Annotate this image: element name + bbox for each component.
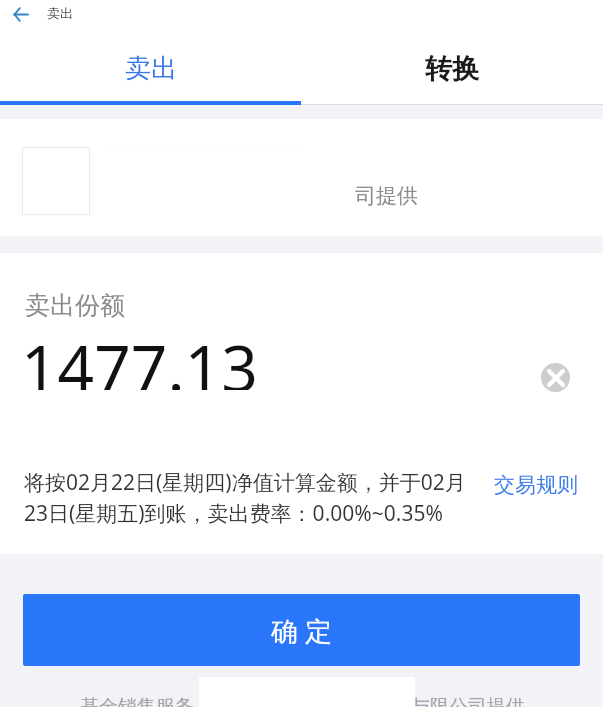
button[interactable]: Clear bbox=[541, 363, 570, 392]
button[interactable]: 卖出 bbox=[0, 34, 301, 101]
staticText: 将按02月22日(星期四)净值计算金额，并于02月23日(星期五)到账，卖出费率… bbox=[24, 468, 479, 527]
staticText: 司提供 bbox=[355, 183, 418, 209]
button[interactable]: 转换 bbox=[301, 34, 603, 101]
staticText: 与限公司提供 bbox=[411, 695, 525, 707]
staticText: 基金销售服务 bbox=[80, 695, 194, 707]
staticText: 确 定 bbox=[271, 612, 333, 649]
staticText: 卖出 bbox=[125, 52, 177, 85]
button[interactable]: Back bbox=[6, 0, 34, 28]
staticText: 卖出份额 bbox=[25, 290, 125, 321]
button[interactable]: 确 定 bbox=[23, 594, 580, 666]
staticText: 卖出 bbox=[47, 5, 73, 21]
button[interactable]: 交易规则 bbox=[494, 472, 578, 498]
staticText: 转换 bbox=[425, 52, 479, 86]
staticText: 1477.13 bbox=[21, 324, 258, 390]
